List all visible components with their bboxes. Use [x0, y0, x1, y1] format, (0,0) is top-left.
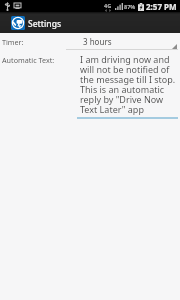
staticText: 87% [124, 3, 136, 10]
button[interactable]: Drive Now Text Later app icon [11, 16, 25, 30]
button[interactable]: I am driving now and will not be notifie… [77, 52, 178, 117]
staticText: Timer: [2, 37, 24, 47]
button[interactable]: 3 hours [66, 33, 178, 50]
staticText: Settings [28, 18, 62, 30]
staticText: Automatic Text: [2, 55, 55, 65]
staticText: 4G [104, 2, 112, 9]
staticText: 3 hours [83, 36, 112, 47]
staticText: I am driving now and will not be notifie… [80, 53, 178, 115]
staticText: 2:57 PM [146, 1, 177, 12]
